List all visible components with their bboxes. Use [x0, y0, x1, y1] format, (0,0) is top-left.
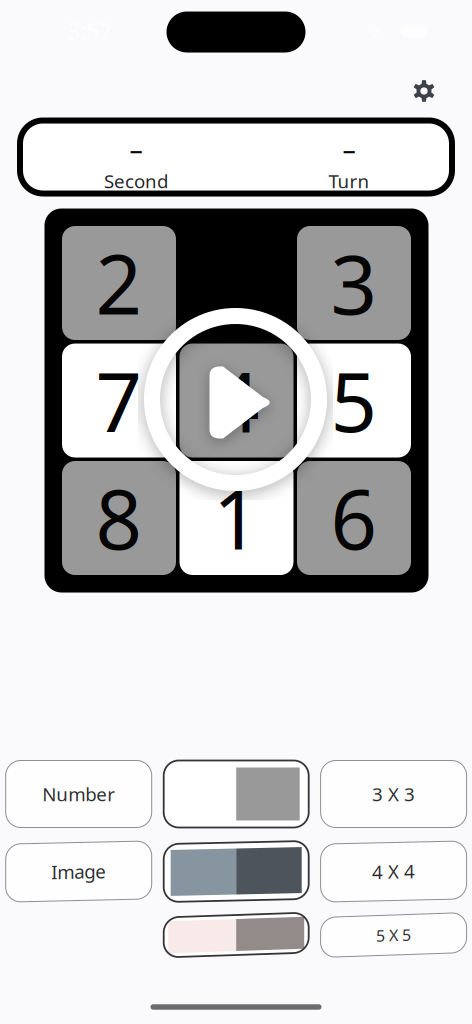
button[interactable]: Number [6, 760, 152, 827]
staticText: 6 [330, 464, 377, 572]
staticText: – [129, 131, 142, 167]
staticText: Image [51, 859, 106, 884]
button[interactable]: 5 X 5 [321, 915, 467, 955]
button[interactable]: Colour theme [164, 760, 309, 827]
staticText: Turn [328, 169, 369, 193]
button[interactable]: 4 X 4 [321, 842, 467, 900]
button[interactable]: Colour theme [164, 915, 309, 955]
staticText: 4 X 4 [372, 859, 415, 884]
staticText: 5 X 5 [376, 924, 411, 946]
button[interactable]: 3 X 3 [321, 760, 467, 827]
button[interactable]: Colour theme [164, 842, 309, 900]
staticText: 5 [330, 346, 377, 454]
staticText: 3 [330, 229, 377, 337]
staticText: 2 [95, 229, 142, 337]
button[interactable]: Image [6, 842, 152, 900]
button[interactable]: Settings [401, 71, 447, 111]
button[interactable]: Play [132, 296, 339, 503]
staticText: 3 X 3 [372, 782, 415, 806]
staticText: 8 [95, 464, 142, 572]
staticText: 7 [95, 346, 142, 454]
staticText: Second [104, 169, 168, 193]
staticText: Number [42, 782, 115, 806]
staticText: 4 [213, 346, 260, 454]
staticText: 1 [213, 464, 260, 572]
staticText: – [342, 131, 355, 167]
